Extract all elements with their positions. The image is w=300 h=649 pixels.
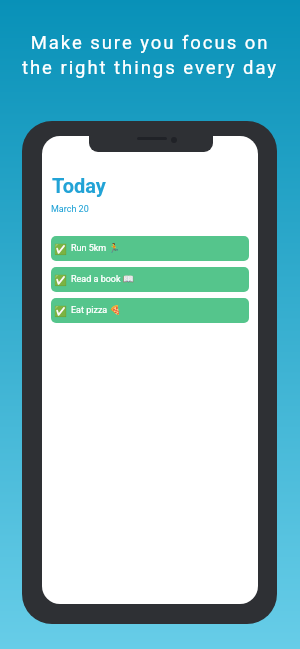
staticText: Make sure you focus on the right things … — [0, 32, 300, 78]
staticText: Read a book 📖 — [71, 274, 134, 285]
staticText: ✅ — [54, 274, 68, 286]
button[interactable]: ✅ — [51, 236, 249, 261]
button[interactable]: ✅ — [51, 298, 249, 323]
staticText: ✅ — [54, 305, 68, 317]
staticText: Today — [52, 174, 106, 197]
staticText: Run 5km 🏃 — [71, 243, 120, 254]
staticText: Eat pizza 🍕 — [71, 305, 121, 316]
staticText: ✅ — [54, 243, 68, 255]
staticText: March 20 — [51, 204, 89, 215]
button[interactable]: ✅ — [51, 267, 249, 292]
